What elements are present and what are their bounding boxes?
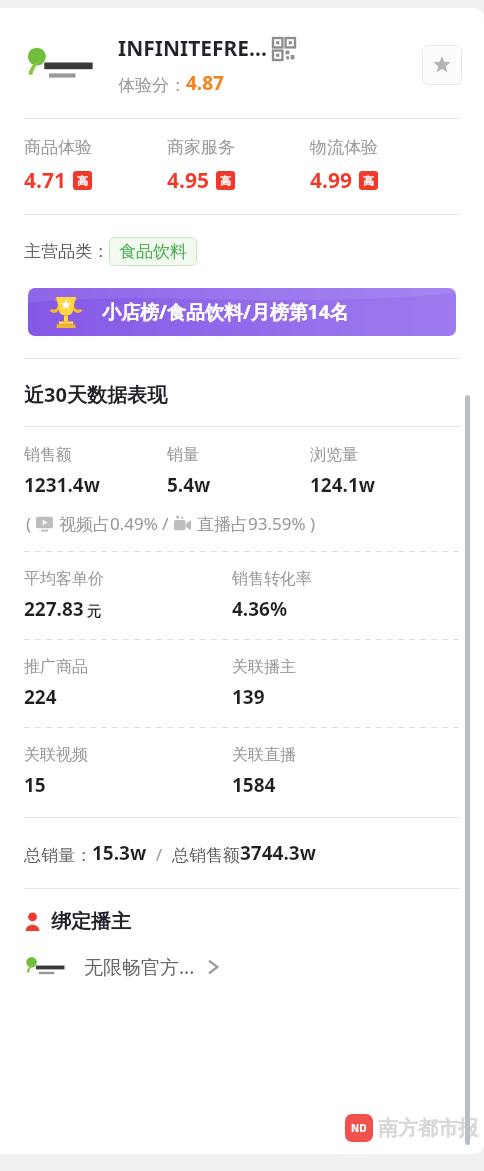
staticText: 4.95 <box>167 166 209 195</box>
staticText: 销量 <box>167 445 199 465</box>
staticText: 224 <box>24 684 57 710</box>
staticText: 视频占0.49% / <box>59 512 174 535</box>
staticText: 推广商品 <box>24 657 88 677</box>
staticText: 4.87 <box>186 70 224 96</box>
staticText: 4.71 <box>24 166 66 195</box>
staticText: ND <box>351 1121 367 1135</box>
staticText: 商家服务 <box>167 137 235 158</box>
staticText: 体验分： <box>118 75 186 96</box>
staticText: 商品体验 <box>24 137 92 158</box>
staticText: INFINITEFRE... <box>118 34 267 63</box>
staticText: 食品饮料 <box>119 241 187 262</box>
button[interactable]: 无限畅官方... <box>0 950 484 984</box>
staticText: 15.3w <box>92 840 147 866</box>
staticText: 高 <box>220 174 231 188</box>
staticText: 关联视频 <box>24 745 88 765</box>
staticText: 3744.3w <box>240 840 316 866</box>
staticText: 1231.4w <box>24 472 100 498</box>
staticText: 高 <box>77 174 88 188</box>
staticText: 1584 <box>232 772 276 798</box>
button[interactable]: 收藏 <box>422 45 462 85</box>
staticText: 227.83 <box>24 596 84 622</box>
staticText: 124.1w <box>310 472 376 498</box>
staticText: 关联播主 <box>232 657 296 677</box>
staticText: 主营品类： <box>24 241 109 262</box>
staticText: 小店榜/食品饮料/月榜第14名 <box>102 299 434 325</box>
staticText: 5.4w <box>167 472 211 498</box>
staticText: 关联直播 <box>232 745 296 765</box>
staticText: 销售转化率 <box>232 569 312 589</box>
button[interactable]: 食品饮料 <box>109 237 197 266</box>
staticText: / <box>147 843 172 866</box>
staticText: 139 <box>232 684 265 710</box>
staticText: 绑定播主 <box>51 909 131 934</box>
staticText: 直播占93.59% ) <box>197 512 316 535</box>
staticText: 南方都市报 <box>378 1116 478 1141</box>
staticText: 物流体验 <box>310 137 378 158</box>
staticText: 浏览量 <box>310 445 358 465</box>
staticText: 高 <box>363 174 374 188</box>
button[interactable]: 小店榜/食品饮料/月榜第14名 <box>28 288 456 336</box>
staticText: 平均客单价 <box>24 569 104 589</box>
staticText: 无限畅官方... <box>84 954 195 980</box>
staticText: 近30天数据表现 <box>24 381 167 408</box>
staticText: ( <box>26 512 36 535</box>
staticText: 元 <box>87 603 101 621</box>
staticText: 4.99 <box>310 166 352 195</box>
staticText: 4.36% <box>232 596 288 622</box>
staticText: 15 <box>24 772 46 798</box>
staticText: 销售额 <box>24 445 72 465</box>
staticText: 总销售额 <box>172 845 240 866</box>
staticText: 总销量： <box>24 845 92 866</box>
